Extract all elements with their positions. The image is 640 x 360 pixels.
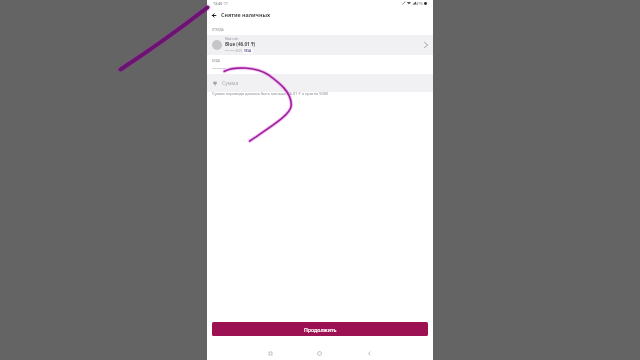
staticText: VISA — [244, 49, 252, 53]
button[interactable]: Продолжить — [212, 322, 428, 336]
button[interactable]: Назад — [209, 10, 219, 20]
staticText: Снятие наличных — [221, 11, 271, 18]
staticText: Сумма перевода должна быть меньше 46.01 … — [212, 91, 329, 96]
button[interactable]: Недавние — [265, 348, 276, 359]
staticText: Blue (46.01 ₸) — [225, 41, 256, 47]
staticText: Сумма — [222, 80, 239, 87]
staticText: ПАРАМЕТРЫ — [212, 67, 227, 70]
staticText: ОТКУДА — [212, 28, 224, 32]
staticText: Мой счёт — [225, 37, 239, 41]
button[interactable]: Главная — [314, 348, 325, 359]
staticText: •••• •••• 4169 — [225, 49, 242, 53]
button[interactable]: Назад — [364, 348, 375, 359]
staticText: 13:40 — [213, 1, 223, 6]
staticText: 41% — [416, 1, 423, 6]
button[interactable]: Мой счёт — [207, 35, 433, 55]
button[interactable]: Сумма — [207, 74, 433, 92]
staticText: Продолжить — [304, 326, 337, 333]
staticText: КУДА — [212, 59, 221, 63]
